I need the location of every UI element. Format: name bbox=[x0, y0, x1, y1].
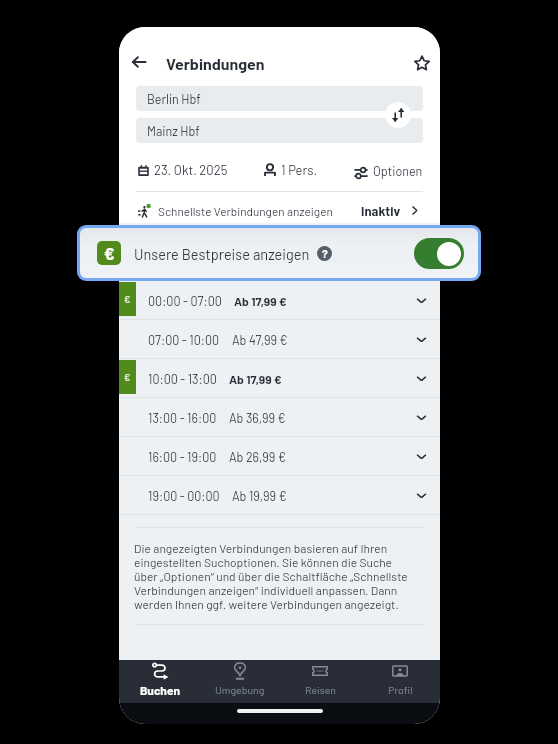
button[interactable]: Profil bbox=[360, 660, 440, 703]
staticText: Inaktiv bbox=[361, 203, 401, 219]
button[interactable]: Richtung tauschen bbox=[385, 102, 411, 128]
staticText: Ab 47,99 € bbox=[232, 332, 288, 347]
staticText: Berlin Hbf bbox=[147, 91, 201, 106]
button[interactable]: € bbox=[119, 281, 440, 320]
staticText: Ab 36,99 € bbox=[229, 410, 286, 425]
staticText: Profil bbox=[388, 683, 413, 696]
button[interactable]: Berlin Hbf bbox=[136, 86, 423, 111]
staticText: Die angezeigten Verbindungen basieren au… bbox=[134, 541, 417, 611]
staticText: € bbox=[124, 293, 131, 305]
staticText: € bbox=[124, 371, 131, 383]
button[interactable]: Favorit bbox=[406, 47, 438, 79]
button[interactable]: € bbox=[119, 359, 440, 398]
staticText: 19:00 - 00:00 bbox=[148, 488, 220, 503]
button[interactable]: Umgebung bbox=[200, 660, 280, 703]
button[interactable]: Reisen bbox=[280, 660, 360, 703]
button[interactable]: Bestpreise anzeigen Schalter bbox=[414, 238, 464, 269]
staticText: Schnellste Verbindungen anzeigen bbox=[158, 204, 333, 218]
button[interactable]: € bbox=[80, 228, 478, 278]
button[interactable]: 1 Pers. bbox=[264, 162, 318, 178]
staticText: Ab 17,99 € bbox=[229, 372, 282, 386]
button[interactable]: Zurück bbox=[123, 46, 155, 78]
button[interactable]: Optionen bbox=[354, 163, 423, 178]
button[interactable]: 07:00 - 10:00 bbox=[119, 320, 440, 359]
staticText: 07:00 - 10:00 bbox=[148, 332, 220, 347]
staticText: 00:00 - 07:00 bbox=[148, 293, 222, 308]
button[interactable]: Schnellste Verbindungen anzeigen bbox=[138, 196, 420, 225]
button[interactable]: Mainz Hbf bbox=[136, 118, 423, 143]
staticText: 16:00 - 19:00 bbox=[148, 449, 217, 464]
button[interactable]: 19:00 - 00:00 bbox=[119, 476, 440, 515]
staticText: Umgebung bbox=[215, 683, 265, 696]
staticText: Unsere Bestpreise anzeigen bbox=[134, 245, 310, 262]
button[interactable]: 16:00 - 19:00 bbox=[119, 437, 440, 476]
staticText: 23. Okt. 2025 bbox=[154, 162, 228, 178]
staticText: Verbindungen bbox=[166, 54, 265, 73]
staticText: Mainz Hbf bbox=[147, 123, 200, 138]
staticText: 1 Pers. bbox=[281, 162, 318, 178]
staticText: Reisen bbox=[305, 683, 336, 696]
button[interactable]: Buchen bbox=[119, 660, 200, 703]
button[interactable]: Hilfe bbox=[317, 246, 332, 261]
staticText: Buchen bbox=[140, 683, 180, 697]
staticText: Ab 19,99 € bbox=[232, 488, 287, 503]
staticText: 10:00 - 13:00 bbox=[148, 371, 217, 386]
staticText: ? bbox=[322, 247, 328, 260]
staticText: € bbox=[104, 243, 115, 263]
button[interactable]: 13:00 - 16:00 bbox=[119, 398, 440, 437]
staticText: 13:00 - 16:00 bbox=[148, 410, 217, 425]
staticText: Optionen bbox=[373, 163, 423, 178]
staticText: Ab 17,99 € bbox=[234, 294, 287, 308]
staticText: Ab 26,99 € bbox=[229, 449, 286, 464]
button[interactable]: 23. Okt. 2025 bbox=[138, 162, 228, 178]
